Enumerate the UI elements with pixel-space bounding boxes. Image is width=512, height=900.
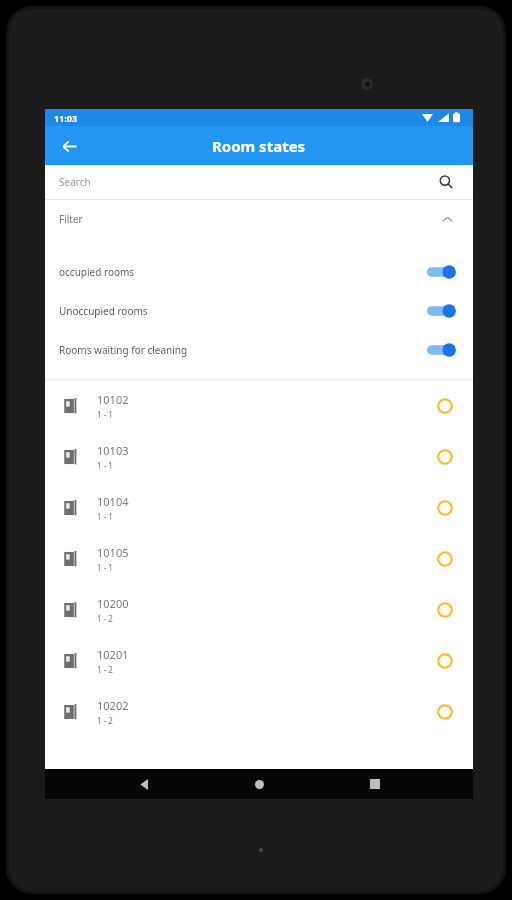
button[interactable]: 10105 — [45, 533, 473, 584]
staticText: 10200 — [97, 596, 129, 611]
button[interactable]: 10103 — [45, 431, 473, 482]
button[interactable]: Unoccupied rooms — [45, 291, 473, 330]
staticText: 1 - 2 — [97, 715, 113, 726]
button[interactable]: 10200 — [45, 584, 473, 635]
staticText: 1 - 2 — [97, 664, 113, 675]
other: Room status — [435, 549, 455, 569]
other: Room status — [435, 396, 455, 416]
staticText: 10102 — [97, 392, 129, 407]
staticText: 1 - 2 — [97, 613, 113, 624]
staticText: Filter — [59, 212, 83, 226]
button[interactable]: 10104 — [45, 482, 473, 533]
button[interactable]: Home — [242, 769, 276, 799]
button[interactable]: Filter — [45, 200, 473, 238]
button[interactable]: 10102 — [45, 380, 473, 431]
button[interactable]: occupied rooms — [45, 252, 473, 291]
other: Room status — [435, 447, 455, 467]
other: Collapse filter — [437, 209, 457, 229]
staticText: Room states — [212, 136, 306, 156]
other: Room status — [435, 702, 455, 722]
button[interactable]: Back — [127, 769, 161, 799]
staticText: 10202 — [97, 698, 129, 713]
staticText: Unoccupied rooms — [59, 304, 148, 318]
other: Room status — [435, 600, 455, 620]
button[interactable]: Rooms waiting for cleaning — [45, 330, 473, 369]
staticText: Rooms waiting for cleaning — [59, 343, 188, 357]
button[interactable]: Recent apps — [358, 769, 392, 799]
button[interactable]: 10201 — [45, 635, 473, 686]
other: Search — [435, 171, 457, 193]
staticText: occupied rooms — [59, 265, 135, 279]
button[interactable]: Search — [45, 165, 473, 199]
staticText: 10105 — [97, 545, 129, 560]
staticText: 1 - 1 — [97, 409, 113, 420]
staticText: 10201 — [97, 647, 129, 662]
staticText: Search — [59, 175, 91, 189]
other: Room status — [435, 498, 455, 518]
staticText: 10103 — [97, 443, 129, 458]
staticText: 10104 — [97, 494, 129, 509]
other: Room status — [435, 651, 455, 671]
staticText: 1 - 1 — [97, 562, 113, 573]
staticText: 1 - 1 — [97, 460, 113, 471]
staticText: 1 - 1 — [97, 511, 113, 522]
button[interactable]: 10202 — [45, 686, 473, 737]
button[interactable]: Back — [53, 130, 85, 162]
staticText: 11:03 — [54, 112, 78, 124]
